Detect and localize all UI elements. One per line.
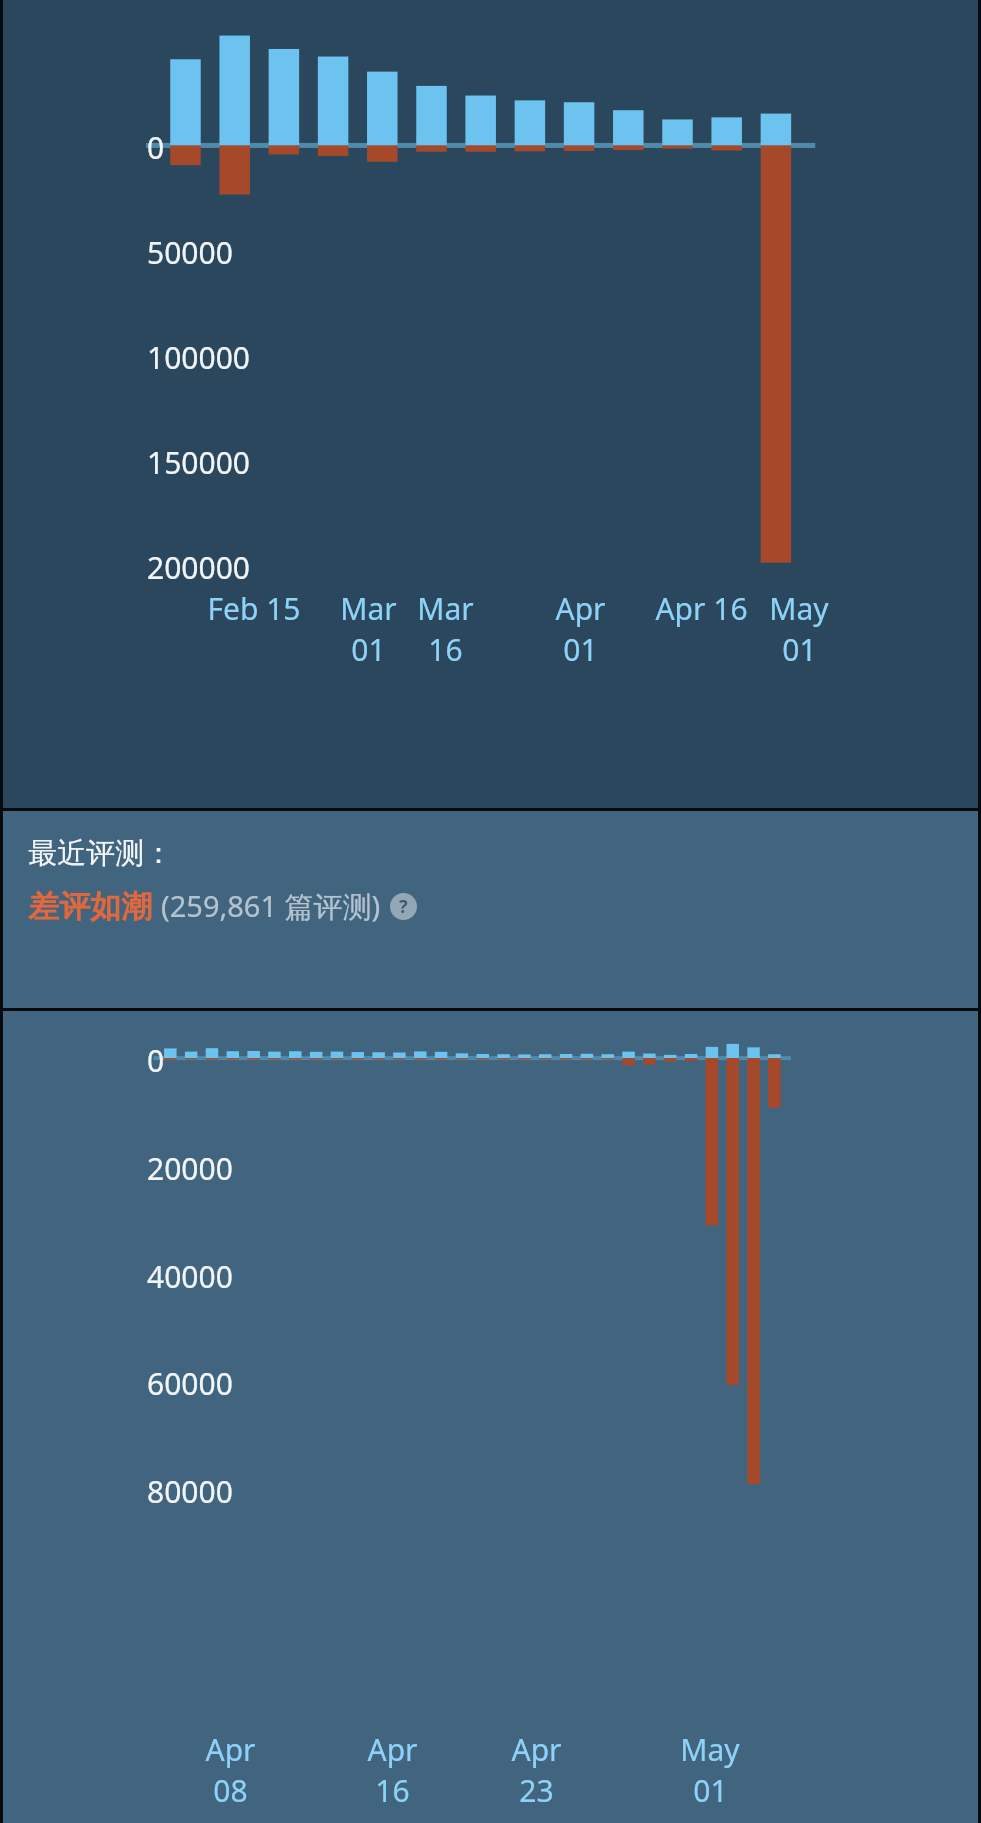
staticText: 80000 [147, 1471, 233, 1512]
button[interactable]: 最近评测： [0, 811, 981, 1008]
staticText: Apr [205, 1729, 256, 1770]
staticText: 差评如潮 [28, 887, 152, 926]
staticText: 01 [351, 629, 386, 670]
staticText: 200000 [147, 547, 250, 588]
staticText: 最近评测： [28, 835, 173, 872]
staticText: Apr [555, 588, 606, 629]
staticText: 20000 [147, 1148, 233, 1189]
staticText: 100000 [147, 337, 250, 378]
staticText: 50000 [147, 232, 233, 273]
button[interactable]: 评测说明帮助 [390, 893, 417, 920]
staticText: ? [399, 894, 408, 919]
staticText: 0 [147, 127, 165, 168]
staticText: 40000 [147, 1256, 233, 1297]
staticText: 16 [375, 1770, 410, 1811]
staticText: Apr [511, 1729, 562, 1770]
staticText: 23 [519, 1770, 554, 1811]
staticText: 01 [563, 629, 598, 670]
staticText: Mar [417, 588, 474, 629]
staticText: Apr 16 [655, 588, 748, 629]
staticText: 08 [213, 1770, 248, 1811]
staticText: Feb 15 [207, 588, 301, 629]
staticText: May [769, 588, 829, 629]
staticText: 150000 [147, 442, 250, 483]
staticText: 01 [693, 1770, 728, 1811]
staticText: (259,861 篇评测) [161, 886, 381, 926]
staticText: 0 [147, 1040, 165, 1081]
staticText: 60000 [147, 1363, 233, 1404]
staticText: May [680, 1729, 740, 1770]
staticText: 16 [428, 629, 463, 670]
staticText: Mar [340, 588, 397, 629]
staticText: 01 [782, 629, 817, 670]
staticText: Apr [367, 1729, 418, 1770]
